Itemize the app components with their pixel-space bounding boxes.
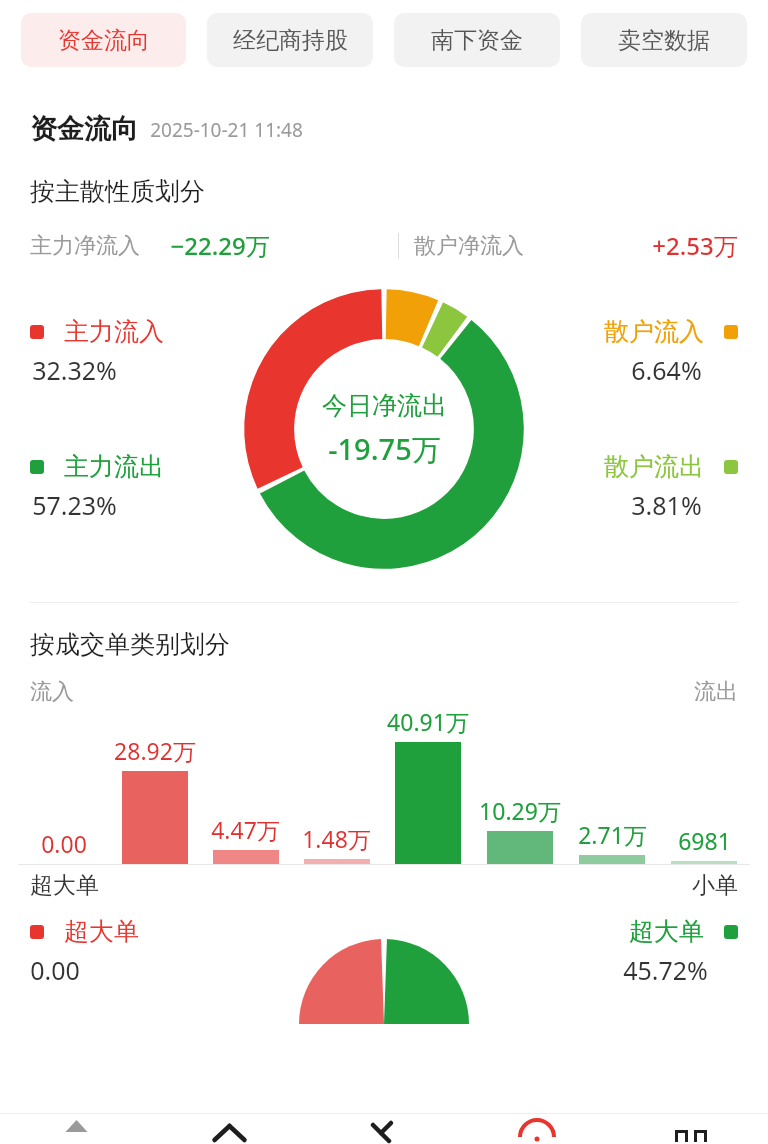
- staticText: 57.23%: [32, 488, 117, 522]
- staticText: −22.29万: [170, 229, 270, 262]
- staticText: -19.75万: [328, 429, 441, 469]
- staticText: 卖空数据: [618, 26, 710, 55]
- button[interactable]: Home: [153, 1114, 306, 1144]
- staticText: 南下资金: [431, 26, 523, 55]
- staticText: 2025-10-21 11:48: [150, 117, 303, 143]
- staticText: 6.64%: [631, 353, 702, 387]
- staticText: 0.00: [41, 828, 87, 859]
- staticText: 流入: [30, 678, 74, 706]
- staticText: 1.48万: [302, 823, 371, 854]
- staticText: 经纪商持股: [233, 26, 348, 55]
- staticText: 今日净流出: [322, 390, 447, 421]
- staticText: 按成交单类别划分: [30, 629, 230, 660]
- staticText: 3.81%: [631, 488, 702, 522]
- staticText: 超大单: [64, 916, 139, 947]
- button[interactable]: 南下资金: [394, 13, 560, 67]
- button[interactable]: Discover: [460, 1114, 614, 1144]
- staticText: 28.92万: [114, 735, 196, 766]
- staticText: +2.53万: [652, 229, 738, 262]
- staticText: 资金流向: [58, 26, 150, 55]
- staticText: 主力流入: [64, 316, 164, 347]
- button[interactable]: 经纪商持股: [207, 13, 373, 67]
- button[interactable]: 卖空数据: [581, 13, 747, 67]
- staticText: 2.71万: [578, 819, 647, 850]
- staticText: 超大单: [629, 916, 704, 947]
- staticText: 散户净流入: [414, 232, 524, 260]
- staticText: 32.32%: [32, 353, 117, 387]
- staticText: 资金流向: [30, 112, 138, 146]
- button[interactable]: 资金流向: [21, 13, 186, 67]
- staticText: 小单: [692, 871, 738, 900]
- button[interactable]: Markets: [306, 1114, 460, 1144]
- button[interactable]: More: [614, 1114, 768, 1144]
- staticText: 散户流出: [604, 451, 704, 482]
- staticText: 主力流出: [64, 451, 164, 482]
- button[interactable]: Back: [0, 1114, 153, 1144]
- staticText: 超大单: [30, 871, 99, 900]
- staticText: 4.47万: [211, 814, 280, 845]
- staticText: 6981: [678, 825, 731, 856]
- staticText: 流出: [694, 678, 738, 706]
- staticText: 10.29万: [479, 795, 561, 826]
- staticText: 按主散性质划分: [30, 176, 205, 207]
- staticText: 主力净流入: [30, 232, 140, 260]
- staticText: 40.91万: [387, 706, 469, 737]
- staticText: 0.00: [30, 953, 80, 987]
- staticText: 45.72%: [623, 953, 708, 987]
- staticText: 散户流入: [604, 316, 704, 347]
